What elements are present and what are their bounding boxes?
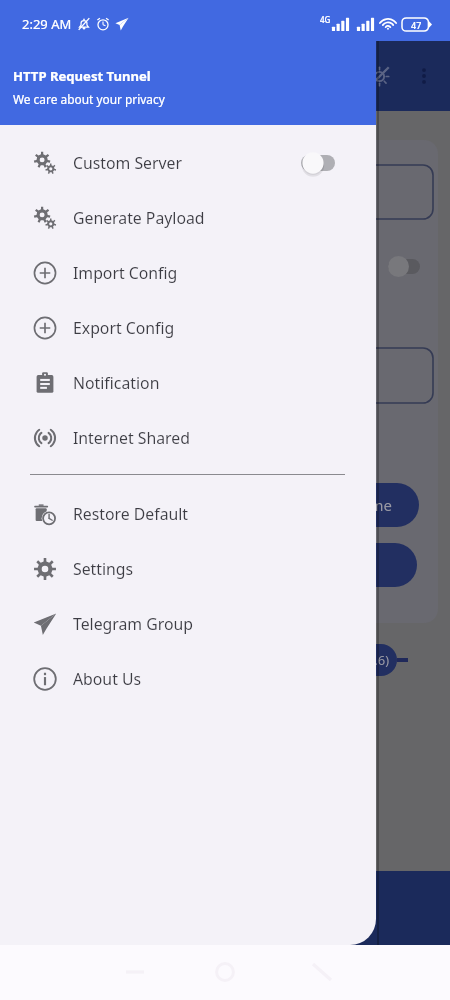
staticText: 47 — [411, 19, 422, 31]
button[interactable]: Brightness — [357, 54, 401, 98]
staticText: Internet Shared — [73, 427, 190, 449]
staticText: HTTP Tunnel — [16, 63, 134, 89]
staticText: Settings — [73, 558, 134, 580]
staticText: Restore Default — [73, 503, 189, 525]
staticText: Notification — [73, 372, 160, 394]
staticText: We care about your privacy — [13, 91, 165, 107]
button[interactable]: Notification — [0, 355, 376, 410]
button[interactable]: Change Username — [20, 483, 419, 527]
staticText: Custom Server — [73, 152, 183, 174]
button[interactable]: Internet Shared — [0, 410, 376, 465]
staticText: Telegram Group — [73, 613, 193, 635]
button[interactable]: Restore Default — [0, 486, 376, 541]
button[interactable]: Version (1.0.6) — [22, 644, 397, 676]
button[interactable]: Settings — [0, 541, 376, 596]
staticText: HTTP Request Tunnel — [13, 67, 151, 85]
staticText: Version (1.0.6) — [303, 651, 390, 669]
button[interactable]: Start — [20, 543, 417, 587]
button[interactable]: Custom Server — [0, 135, 376, 190]
button[interactable]: Export Config — [0, 300, 376, 355]
staticText: Remote Proxy — [26, 257, 118, 276]
staticText: Import Config — [73, 262, 178, 284]
button[interactable]: About Us — [0, 651, 376, 706]
staticText: Change Username — [261, 495, 392, 515]
button[interactable]: Import Config — [0, 245, 376, 300]
staticText: Export Config — [73, 317, 175, 339]
staticText: Generate Payload — [73, 207, 205, 229]
button[interactable]: Generate Payload — [0, 190, 376, 245]
staticText: 4G — [320, 14, 331, 25]
staticText: About Us — [73, 668, 142, 690]
button[interactable]: Telegram Group — [0, 596, 376, 651]
staticText: 2:29 AM — [22, 15, 72, 33]
